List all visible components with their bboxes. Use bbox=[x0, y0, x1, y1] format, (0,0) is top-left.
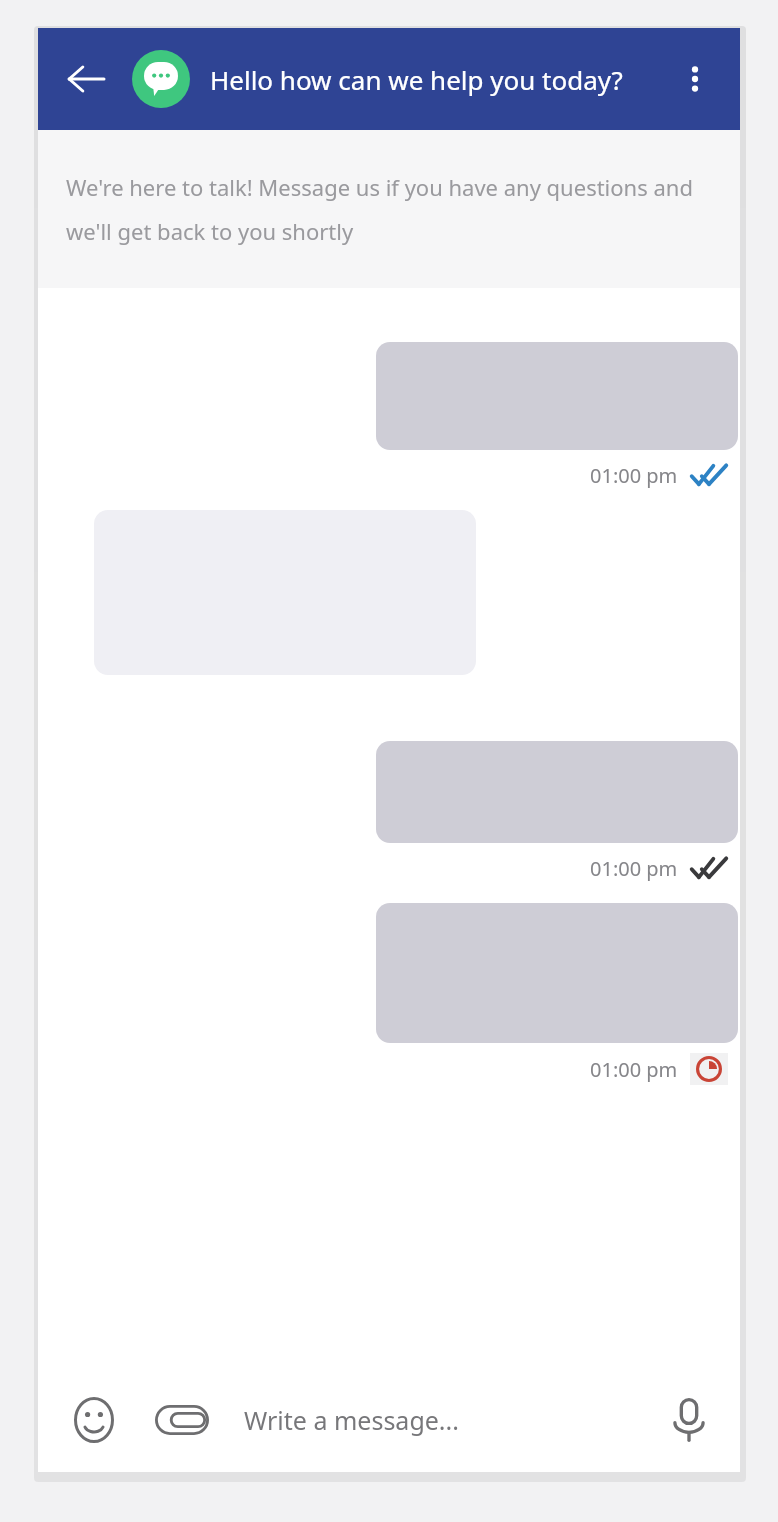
button[interactable]: Message pending bbox=[690, 1053, 728, 1085]
button[interactable] bbox=[376, 342, 738, 450]
button[interactable]: Insert emoji bbox=[68, 1394, 120, 1446]
button[interactable]: Attach file bbox=[152, 1394, 212, 1446]
staticText: 01:00 pm bbox=[590, 462, 678, 489]
staticText: We're here to talk! Message us if you ha… bbox=[66, 172, 712, 246]
button[interactable]: Message read bbox=[690, 460, 728, 490]
staticText: Hello how can we help you today? bbox=[210, 62, 623, 97]
button[interactable]: More options bbox=[664, 48, 726, 110]
staticText: 01:00 pm bbox=[590, 1056, 678, 1083]
button[interactable]: Contact avatar bbox=[132, 50, 190, 108]
button[interactable]: Record voice message bbox=[660, 1391, 718, 1449]
button[interactable]: Message read bbox=[690, 853, 728, 883]
staticText: Write a message... bbox=[244, 1403, 459, 1437]
button[interactable] bbox=[376, 741, 738, 843]
button[interactable]: Write a message... bbox=[244, 1390, 660, 1450]
button[interactable]: Back bbox=[58, 51, 114, 107]
staticText: 01:00 pm bbox=[590, 855, 678, 882]
